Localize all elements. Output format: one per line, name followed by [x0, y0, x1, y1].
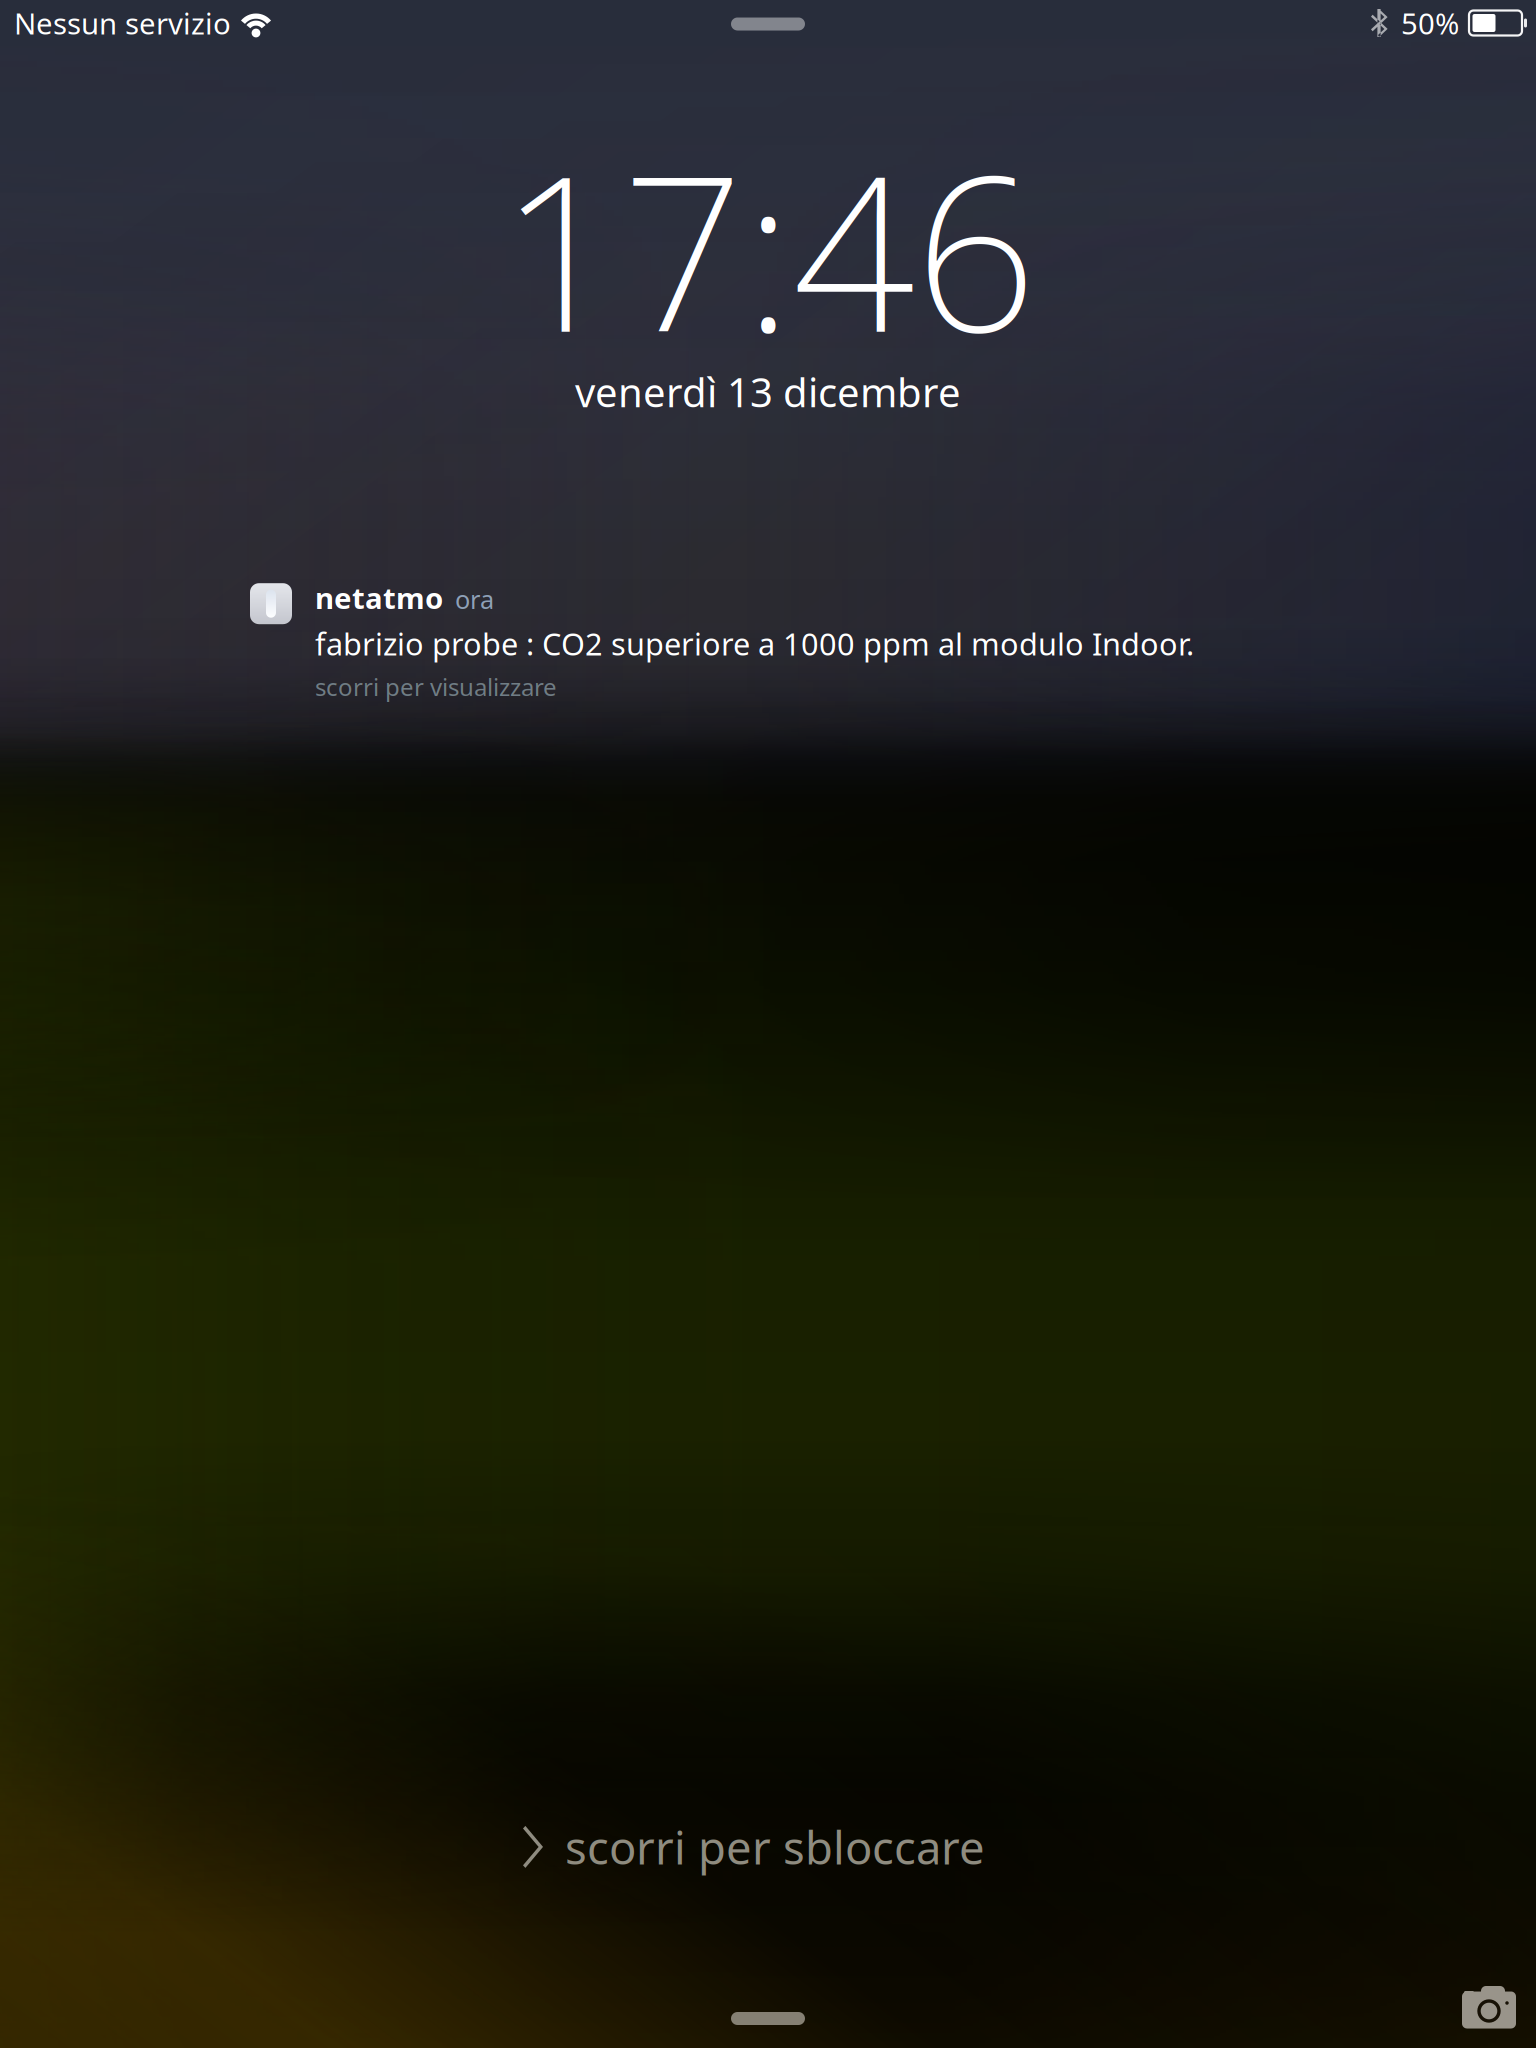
staticText: netatmo: [315, 578, 443, 617]
staticText: fabrizio probe : CO2 superiore a 1000 pp…: [315, 623, 1194, 664]
button[interactable]: scorri per sbloccare: [523, 1817, 985, 1877]
staticText: 17:46: [499, 106, 1036, 391]
staticText: scorri per sbloccare: [565, 1817, 985, 1877]
button[interactable]: Centro Notifiche: [731, 16, 805, 29]
staticText: ora: [455, 582, 494, 616]
staticText: 50%: [1401, 3, 1459, 42]
button[interactable]: netatmo: [0, 578, 1536, 703]
staticText: Nessun servizio: [14, 3, 231, 42]
button[interactable]: Centro di Controllo: [731, 2012, 805, 2048]
staticText: scorri per visualizzare: [315, 671, 557, 703]
button[interactable]: Camera: [1458, 1977, 1520, 2033]
staticText: venerdì 13 dicembre: [575, 365, 961, 418]
